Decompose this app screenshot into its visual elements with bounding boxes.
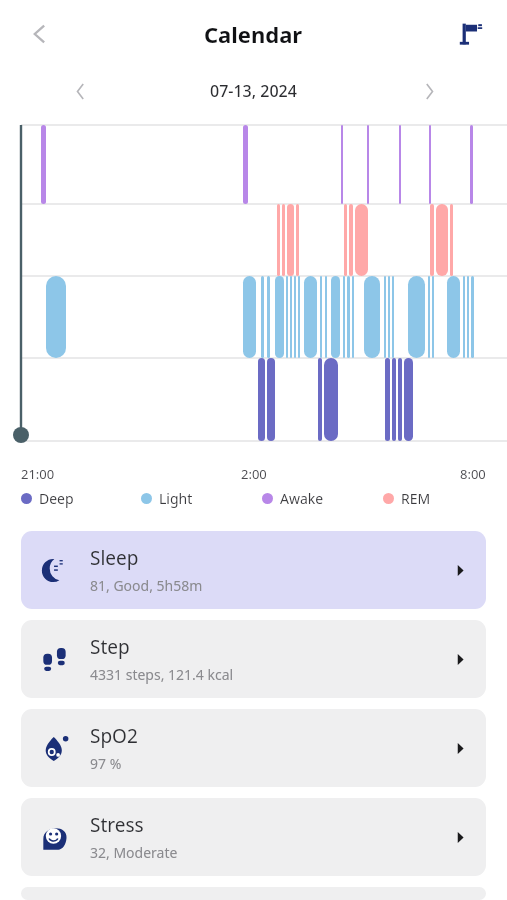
staticText: 2:00 xyxy=(241,465,267,483)
staticText: Awake xyxy=(280,489,324,508)
staticText: 81, Good, 5h58m xyxy=(90,576,203,595)
staticText: REM xyxy=(401,489,431,508)
staticText: 32, Moderate xyxy=(90,843,178,862)
button[interactable]: Back xyxy=(18,12,62,56)
staticText: Calendar xyxy=(204,19,303,49)
staticText: SpO2 xyxy=(90,723,138,749)
button[interactable]: Step xyxy=(21,620,486,698)
button[interactable]: Goal xyxy=(449,12,493,56)
staticText: 21:00 xyxy=(21,465,55,483)
staticText: 8:00 xyxy=(460,465,486,483)
button[interactable]: Previous week xyxy=(60,71,100,111)
staticText: Sleep xyxy=(90,545,139,571)
button[interactable]: Next week xyxy=(409,71,449,111)
staticText: 07-13, 2024 xyxy=(210,80,297,102)
button[interactable]: SpO2 xyxy=(21,709,486,787)
staticText: Stress xyxy=(90,812,144,838)
staticText: Deep xyxy=(39,489,74,508)
staticText: 97 % xyxy=(90,754,122,773)
button[interactable]: Sleep xyxy=(21,531,486,609)
staticText: 4331 steps, 121.4 kcal xyxy=(90,665,234,684)
staticText: Step xyxy=(90,634,130,660)
button[interactable]: Stress xyxy=(21,798,486,876)
staticText: Light xyxy=(159,489,193,508)
